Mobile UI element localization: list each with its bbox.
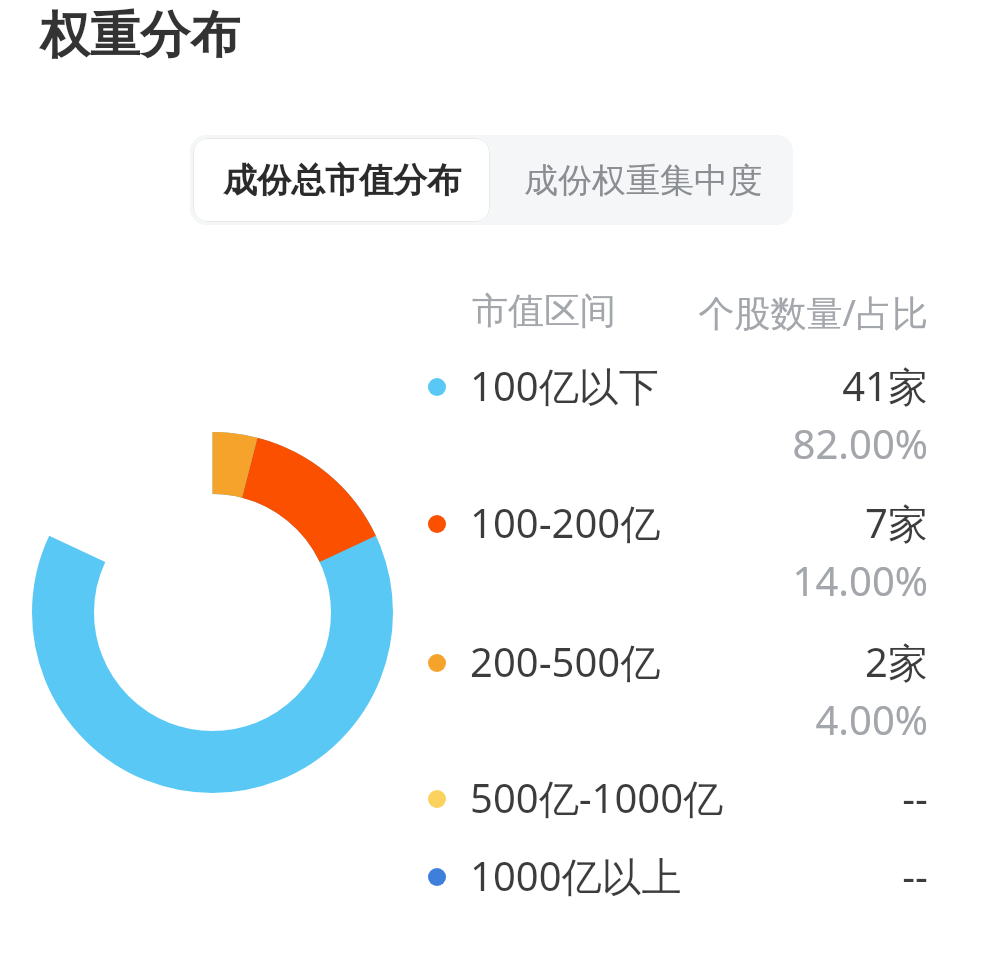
button[interactable]: 成份权重集中度 (493, 135, 793, 225)
staticText: 500亿-1000亿 (470, 770, 724, 825)
staticText: 成份总市值分布 (223, 159, 461, 202)
staticText: 7家 (0, 495, 928, 550)
staticText: 权重分布 (40, 4, 240, 67)
staticText: 成份权重集中度 (524, 159, 762, 202)
staticText: 82.00% (0, 416, 928, 470)
staticText: 个股数量/占比 (0, 288, 928, 337)
staticText: 2家 (0, 634, 928, 689)
staticText: 14.00% (0, 553, 928, 607)
staticText: 市值区间 (472, 288, 616, 333)
staticText: 100亿以下 (470, 358, 659, 413)
staticText: 4.00% (0, 692, 928, 746)
staticText: 200-500亿 (470, 634, 661, 689)
staticText: -- (0, 848, 928, 902)
button[interactable]: 200-500亿 (0, 634, 987, 764)
button[interactable]: 100-200亿 (0, 495, 987, 625)
button[interactable]: 1000亿以上 (0, 848, 987, 918)
staticText: 1000亿以上 (470, 848, 682, 903)
staticText: -- (0, 770, 928, 824)
button[interactable]: 500亿-1000亿 (0, 770, 987, 840)
button[interactable]: 100亿以下 (0, 358, 987, 488)
staticText: 41家 (0, 358, 928, 413)
staticText: 100-200亿 (470, 495, 661, 550)
button[interactable]: 成份总市值分布 (193, 138, 490, 222)
